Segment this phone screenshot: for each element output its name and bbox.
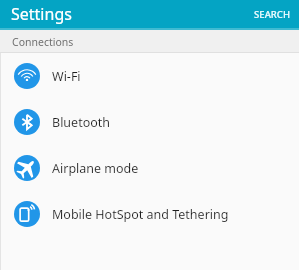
button[interactable]: SEARCH [245,4,299,25]
button[interactable]: Airplane mode [0,145,299,191]
other: Wi-Fi [14,63,40,89]
staticText: Mobile HotSpot and Tethering [52,206,229,223]
button[interactable]: Wi-Fi [0,53,299,99]
staticText: Wi-Fi [52,68,81,85]
staticText: Settings [11,3,72,25]
other: Bluetooth [14,109,40,135]
staticText: Airplane mode [52,160,139,177]
other: Airplane mode [14,155,40,181]
other: Mobile HotSpot and Tethering [14,201,40,227]
staticText: Connections [12,35,74,49]
staticText: SEARCH [254,8,290,21]
staticText: Bluetooth [52,114,111,131]
button[interactable]: Bluetooth [0,99,299,145]
button[interactable]: Mobile HotSpot and Tethering [0,191,299,237]
